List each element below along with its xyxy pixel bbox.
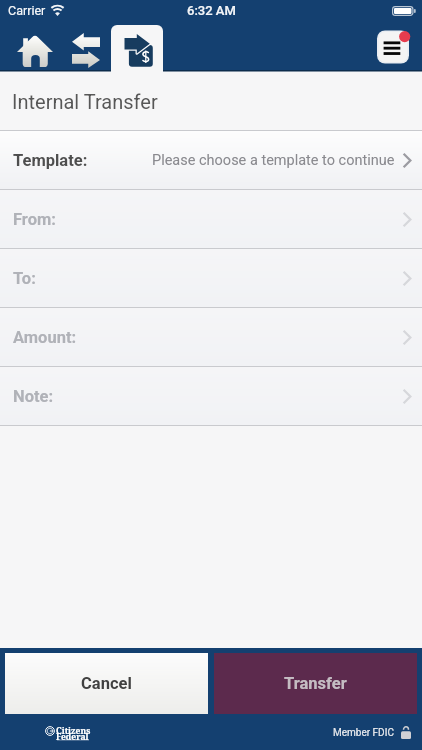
- staticText: 6:32 AM: [187, 3, 236, 18]
- staticText: Template:: [13, 151, 88, 170]
- staticText: Carrier: [8, 3, 46, 18]
- staticText: Note:: [13, 387, 54, 406]
- button[interactable]: Home: [17, 35, 53, 67]
- button[interactable]: To:: [0, 249, 422, 307]
- staticText: Federal: [56, 731, 89, 743]
- button[interactable]: Cancel: [5, 653, 208, 714]
- staticText: Transfer: [284, 674, 347, 693]
- staticText: Citizens: [56, 725, 91, 737]
- staticText: Cancel: [81, 674, 132, 693]
- staticText: Member FDIC: [333, 727, 394, 739]
- button[interactable]: From:: [0, 190, 422, 248]
- button[interactable]: Template:: [0, 131, 422, 189]
- button[interactable]: Note:: [0, 367, 422, 425]
- button[interactable]: Transfers: [72, 33, 100, 68]
- staticText: To:: [13, 269, 36, 288]
- button[interactable]: Menu: [376, 29, 414, 68]
- staticText: Internal Transfer: [12, 90, 158, 113]
- button[interactable]: Internal Transfer: [111, 25, 163, 72]
- button[interactable]: Transfer: [214, 653, 417, 714]
- staticText: From:: [13, 210, 56, 229]
- staticText: Please choose a template to continue: [152, 152, 395, 169]
- staticText: Amount:: [13, 328, 77, 347]
- button[interactable]: Amount:: [0, 308, 422, 366]
